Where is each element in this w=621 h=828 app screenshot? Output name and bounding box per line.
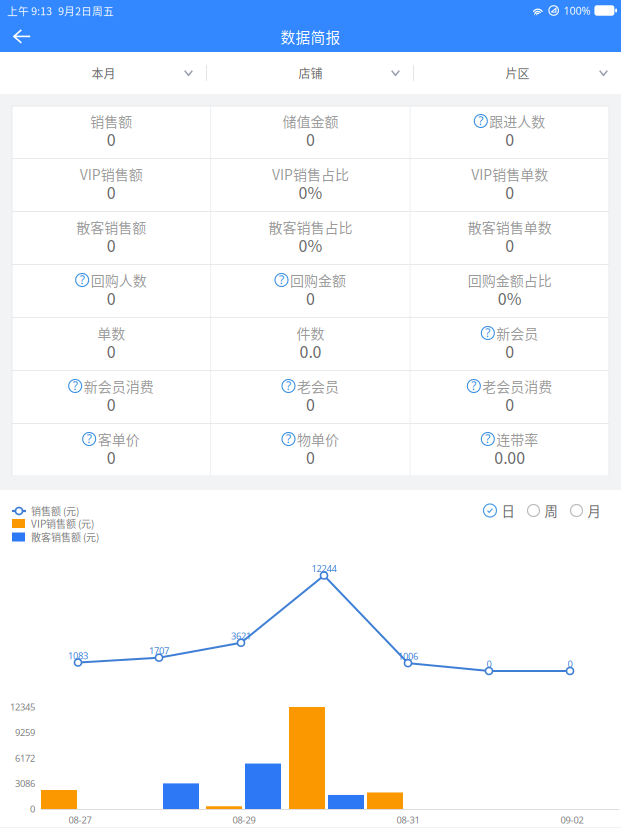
staticText: 1083 bbox=[68, 649, 88, 662]
staticText: 数据简报 bbox=[280, 26, 340, 47]
staticText: 周 bbox=[544, 501, 557, 520]
staticText: 连带率 bbox=[496, 429, 538, 449]
staticText: 6172 bbox=[15, 752, 35, 764]
staticText: 回购人数 bbox=[91, 270, 147, 290]
staticText: 跟进人数 bbox=[489, 111, 545, 131]
button[interactable]: 店铺 bbox=[207, 52, 414, 94]
staticText: 9259 bbox=[15, 726, 35, 739]
staticText: ? bbox=[286, 430, 291, 446]
staticText: VIP销售额 bbox=[80, 164, 143, 184]
staticText: ? bbox=[80, 271, 85, 287]
staticText: 0 bbox=[306, 445, 315, 469]
button[interactable]: 本月 bbox=[0, 52, 207, 94]
staticText: 0 bbox=[306, 286, 315, 310]
staticText: 0.0 bbox=[299, 339, 321, 363]
staticText: ? bbox=[73, 377, 78, 393]
staticText: 片区 bbox=[505, 64, 529, 82]
staticText: 客单价 bbox=[98, 429, 140, 449]
staticText: 0% bbox=[298, 180, 322, 204]
staticText: VIP销售额 (元) bbox=[31, 516, 94, 531]
staticText: 0 bbox=[107, 392, 116, 416]
button[interactable]: 月 bbox=[570, 503, 600, 518]
staticText: 销售额 bbox=[90, 111, 132, 131]
staticText: 本月 bbox=[91, 64, 115, 82]
staticText: 12345 bbox=[10, 701, 35, 713]
button[interactable]: Back bbox=[0, 21, 44, 52]
staticText: 0 bbox=[505, 233, 514, 257]
staticText: 老会员消费 bbox=[482, 376, 552, 396]
staticText: 日 bbox=[501, 501, 514, 520]
button[interactable]: 片区 bbox=[414, 52, 621, 94]
staticText: 1707 bbox=[149, 644, 169, 657]
staticText: 0 bbox=[306, 127, 315, 151]
staticText: 0 bbox=[107, 127, 116, 151]
button[interactable]: 日 bbox=[483, 503, 514, 518]
staticText: 0% bbox=[498, 286, 522, 310]
staticText: 散客销售额 bbox=[76, 217, 146, 237]
staticText: 3621 bbox=[231, 630, 251, 642]
staticText: 12244 bbox=[311, 562, 336, 575]
staticText: VIP销售单数 bbox=[471, 164, 548, 184]
staticText: 储值金额 bbox=[282, 111, 338, 131]
staticText: 0 bbox=[30, 803, 35, 815]
staticText: 08-31 bbox=[396, 814, 419, 826]
staticText: 0 bbox=[107, 233, 116, 257]
staticText: 0 bbox=[505, 180, 514, 204]
staticText: 08-27 bbox=[68, 814, 91, 826]
staticText: 0% bbox=[298, 233, 322, 257]
staticText: 散客销售单数 bbox=[468, 217, 552, 237]
staticText: ? bbox=[279, 271, 284, 287]
staticText: 新会员 bbox=[496, 323, 538, 343]
staticText: VIP销售占比 bbox=[272, 164, 349, 184]
button[interactable]: 周 bbox=[527, 503, 557, 518]
staticText: 0 bbox=[567, 658, 572, 670]
staticText: 0.00 bbox=[494, 445, 525, 469]
staticText: 3086 bbox=[15, 777, 35, 790]
staticText: ? bbox=[87, 430, 92, 446]
staticText: 0 bbox=[505, 339, 514, 363]
staticText: 散客销售占比 bbox=[268, 217, 352, 237]
staticText: 月 bbox=[587, 501, 600, 520]
staticText: 0 bbox=[505, 392, 514, 416]
staticText: 物单价 bbox=[297, 429, 339, 449]
staticText: ? bbox=[286, 377, 291, 393]
staticText: 0 bbox=[505, 127, 514, 151]
staticText: ? bbox=[471, 377, 476, 393]
staticText: 回购金额占比 bbox=[468, 270, 552, 290]
staticText: 1006 bbox=[398, 650, 418, 662]
staticText: 销售额 (元) bbox=[31, 504, 79, 518]
staticText: 老会员 bbox=[297, 376, 339, 396]
staticText: 回购金额 bbox=[290, 270, 346, 290]
staticText: 09-02 bbox=[560, 814, 583, 826]
staticText: 新会员消费 bbox=[84, 376, 154, 396]
staticText: 0 bbox=[107, 339, 116, 363]
staticText: 08-29 bbox=[232, 814, 255, 826]
staticText: 0 bbox=[306, 392, 315, 416]
staticText: 单数 bbox=[97, 323, 125, 343]
staticText: 100% bbox=[563, 3, 590, 18]
staticText: 0 bbox=[107, 180, 116, 204]
staticText: 店铺 bbox=[298, 64, 322, 82]
staticText: 0 bbox=[107, 286, 116, 310]
staticText: 0 bbox=[107, 445, 116, 469]
staticText: 散客销售额 (元) bbox=[31, 530, 99, 544]
staticText: 上午 9:13 9月2日周五 bbox=[7, 3, 114, 18]
staticText: ? bbox=[485, 324, 490, 340]
staticText: 0 bbox=[486, 658, 491, 670]
staticText: 件数 bbox=[296, 323, 324, 343]
staticText: ? bbox=[478, 112, 483, 128]
staticText: ? bbox=[485, 430, 490, 446]
